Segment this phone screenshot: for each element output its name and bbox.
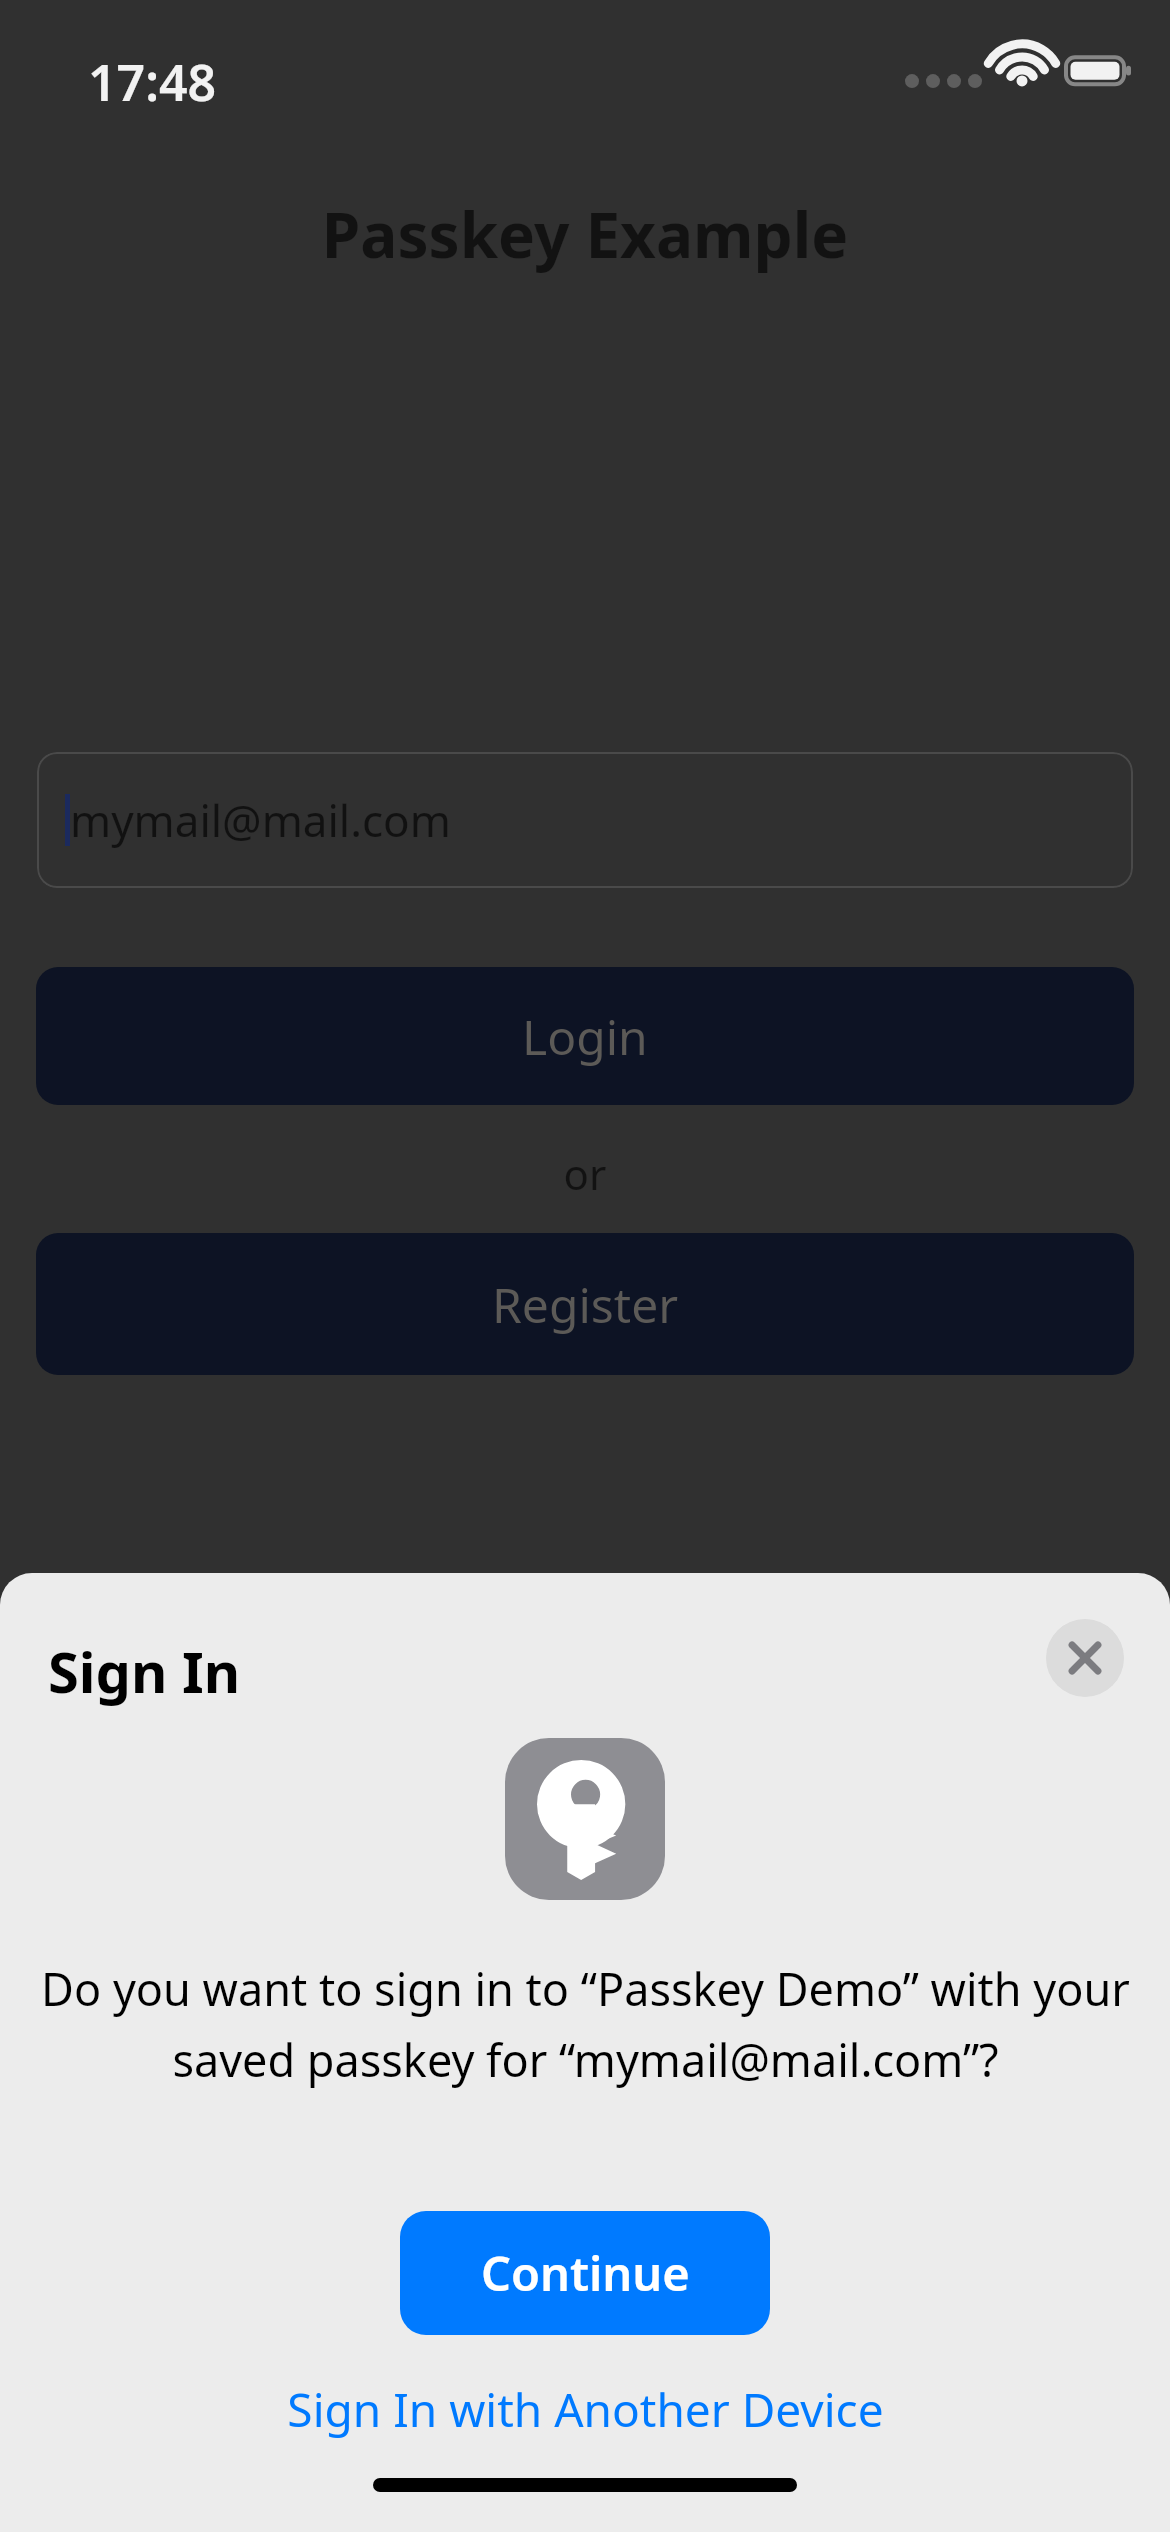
staticText: saved passkey for “mymail@mail.com”? <box>172 2029 999 2090</box>
staticText: Continue <box>481 2241 690 2305</box>
staticText: 17:48 <box>88 48 217 116</box>
staticText: Sign In with Another Device <box>287 2378 884 2441</box>
staticText: Passkey Example <box>0 192 1170 276</box>
staticText: Register <box>492 1272 679 1337</box>
button[interactable]: mymail@mail.com <box>37 752 1133 888</box>
staticText: Sign In <box>48 1633 241 1709</box>
staticText: mymail@mail.com <box>70 790 451 850</box>
button[interactable]: Continue <box>400 2211 770 2335</box>
button[interactable]: Register <box>36 1233 1134 1375</box>
button[interactable]: Sign In with Another Device <box>0 2363 1170 2455</box>
staticText: Login <box>522 1004 648 1069</box>
button[interactable]: Close <box>1046 1619 1124 1697</box>
button[interactable]: Login <box>36 967 1134 1105</box>
staticText: Do you want to sign in to “Passkey Demo”… <box>41 1958 1130 2019</box>
